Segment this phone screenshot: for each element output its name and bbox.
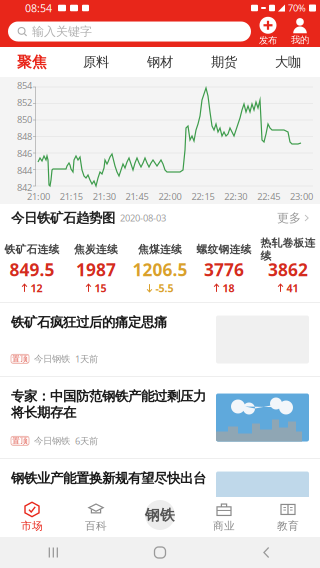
button[interactable]: 大咖 [256,47,320,77]
staticText: 输入关键字 [32,24,92,39]
staticText: 15 [94,281,106,295]
staticText: 848 [17,130,32,143]
staticText: 18 [222,281,234,295]
button[interactable]: 期货 [192,47,256,77]
staticText: 今日铁矿石趋势图 [11,210,115,226]
staticText: 22:00 [158,190,181,203]
staticText: 置顶 [12,510,28,520]
staticText: 焦炭连续 [74,243,118,256]
staticText: 842 [17,181,32,194]
staticText: 1天前 [75,353,98,365]
button[interactable]: 钢铁 [140,495,180,535]
staticText: 7天前 [75,509,98,521]
staticText: 专家：中国防范钢铁产能过剩压力将长期存在 [11,388,206,421]
staticText: 12 [30,281,42,295]
button[interactable]: 聚焦 [0,47,64,77]
staticText: 854 [17,79,32,92]
staticText: 市场 [21,519,43,532]
staticText: 2020-08-03 [120,212,166,224]
staticText: 22:30 [224,190,247,203]
staticText: 钢材 [147,54,173,70]
staticText: 教育 [277,519,299,532]
staticText: 大咖 [275,54,301,70]
staticText: 铁矿石连续 [4,243,59,256]
staticText: 21:00 [27,190,50,203]
staticText: 3776 [204,258,244,281]
staticText: 钢铁业产能置换新规有望尽快出台 [11,470,206,486]
staticText: 聚焦 [17,53,47,71]
button[interactable]: 输入关键字 [8,21,251,41]
staticText: 23:00 [290,190,313,203]
button[interactable]: Recents [0,537,107,568]
staticText: 849.5 [9,258,54,281]
button[interactable]: Back [213,537,320,568]
staticText: 原料 [83,54,109,70]
button[interactable]: 铁矿石疯狂过后的痛定思痛 [0,303,320,376]
staticText: 844 [17,164,32,177]
button[interactable]: 商业 [192,497,256,537]
staticText: 焦煤连续 [138,243,182,256]
staticText: -5.5 [155,281,173,295]
button[interactable]: 焦煤连续 [128,232,192,302]
staticText: 846 [17,147,32,160]
staticText: 852 [17,96,32,109]
button[interactable]: 原料 [64,47,128,77]
button[interactable]: 我的 [285,17,315,45]
staticText: 22:15 [191,190,214,203]
button[interactable]: 钢铁业产能置换新规有望尽快出台 [0,459,320,532]
staticText: 21:30 [93,190,116,203]
button[interactable]: 钢材 [128,47,192,77]
staticText: 今日钢铁 [34,435,70,447]
button[interactable]: 更多 [277,204,309,232]
staticText: 百科 [85,519,107,532]
staticText: 螺纹钢连续 [196,243,251,256]
staticText: 41 [286,281,298,295]
staticText: 热轧卷板连续 [260,236,315,263]
button[interactable]: 百科 [64,497,128,537]
button[interactable]: 教育 [256,497,320,537]
button[interactable]: 焦炭连续 [64,232,128,302]
staticText: 钢铁 [145,506,175,524]
staticText: 850 [17,113,32,126]
button[interactable]: 螺纹钢连续 [192,232,256,302]
staticText: 1206.5 [132,258,187,281]
staticText: 期货 [211,54,237,70]
staticText: 70% [288,2,306,14]
staticText: 更多 [277,211,301,225]
staticText: 今日钢铁 [34,509,70,521]
staticText: 6天前 [75,435,98,447]
staticText: 置顶 [12,436,28,446]
button[interactable]: 专家：中国防范钢铁产能过剩压力将长期存在 [0,377,320,458]
button[interactable]: 市场 [0,497,64,537]
staticText: 商业 [213,519,235,532]
staticText: 发布 [259,35,277,46]
button[interactable]: 发布 [253,17,283,45]
button[interactable]: 热轧卷板连续 [256,232,320,302]
button[interactable]: 铁矿石连续 [0,232,64,302]
staticText: 我的 [291,34,309,46]
staticText: 22:45 [257,190,280,203]
staticText: 铁矿石疯狂过后的痛定思痛 [11,314,167,330]
staticText: 08:54 [25,1,52,15]
button[interactable]: Home [107,537,213,568]
staticText: 置顶 [12,354,28,364]
staticText: 21:15 [60,190,83,203]
staticText: 1987 [76,258,116,281]
staticText: 21:45 [126,190,149,203]
staticText: 3862 [268,258,308,281]
staticText: 今日钢铁 [34,353,70,365]
